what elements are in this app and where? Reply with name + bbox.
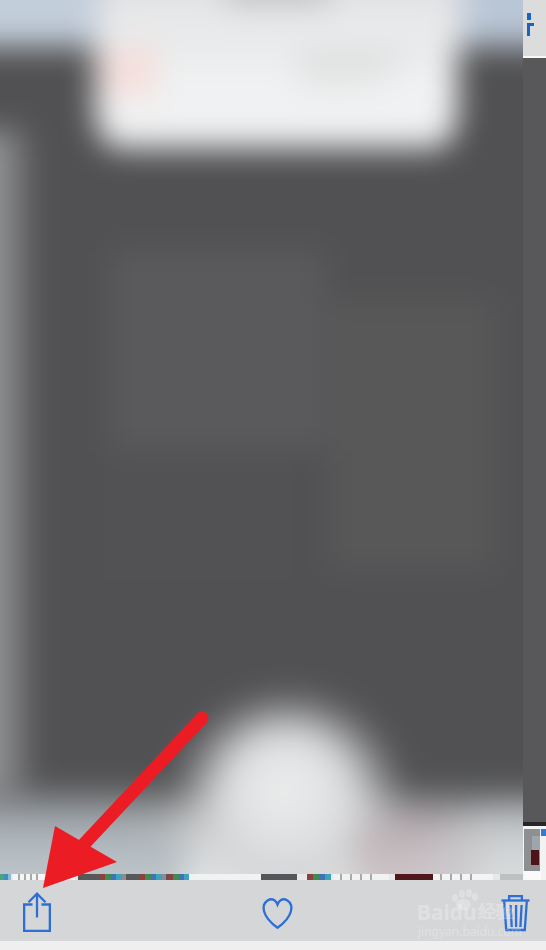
staticText: jingyan.baidu.com	[418, 923, 522, 939]
button[interactable]: Delete	[483, 886, 546, 939]
button[interactable]: Favorite	[245, 887, 309, 940]
button[interactable]: Share	[5, 886, 69, 939]
staticText: Baidu	[417, 898, 477, 927]
staticText: 经验	[478, 901, 514, 924]
